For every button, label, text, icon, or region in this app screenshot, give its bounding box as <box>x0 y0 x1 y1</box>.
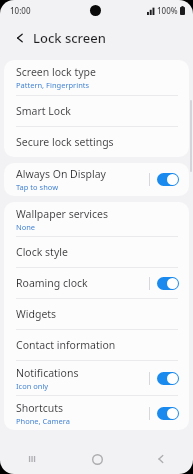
staticText: Notifications <box>16 366 79 380</box>
staticText: Roaming clock <box>16 276 88 290</box>
button[interactable]: Smart Lock <box>4 96 189 126</box>
button[interactable]: Clock style <box>4 237 189 267</box>
staticText: Tap to show <box>16 182 59 192</box>
staticText: Secure lock settings <box>16 135 114 149</box>
button[interactable]: Shortcuts <box>4 396 189 430</box>
button[interactable]: Screen lock type <box>4 60 189 95</box>
button[interactable]: Always On Display <box>4 163 189 196</box>
staticText: Smart Lock <box>16 104 71 118</box>
staticText: Always On Display <box>16 167 106 181</box>
staticText: Pattern, Fingerprints <box>16 80 90 90</box>
staticText: None <box>16 222 36 232</box>
staticText: Contact information <box>16 338 116 352</box>
staticText: 100% <box>157 5 178 16</box>
staticText: Screen lock type <box>16 65 96 79</box>
button[interactable]: Widgets <box>4 299 189 329</box>
staticText: Lock screen <box>33 29 106 47</box>
button[interactable]: Secure lock settings <box>4 127 189 157</box>
staticText: Clock style <box>16 245 68 259</box>
staticText: Shortcuts <box>16 401 64 415</box>
button[interactable]: Wallpaper services <box>4 202 189 236</box>
button[interactable]: Toggle <box>157 173 179 186</box>
button[interactable]: Notifications <box>4 361 189 395</box>
button[interactable]: Toggle <box>157 372 179 385</box>
staticText: Icon only <box>16 381 49 391</box>
button[interactable]: Back <box>129 444 193 474</box>
staticText: 10:00 <box>10 5 31 16</box>
staticText: Widgets <box>16 307 57 321</box>
button[interactable]: Recents <box>0 444 65 474</box>
button[interactable]: Toggle <box>157 407 179 420</box>
button[interactable]: Contact information <box>4 330 189 360</box>
staticText: Wallpaper services <box>16 207 108 221</box>
button[interactable]: Toggle <box>157 277 179 290</box>
button[interactable]: Roaming clock <box>4 268 189 298</box>
button[interactable]: Home <box>65 444 129 474</box>
staticText: Phone, Camera <box>16 416 70 426</box>
button[interactable]: Back <box>7 25 33 51</box>
